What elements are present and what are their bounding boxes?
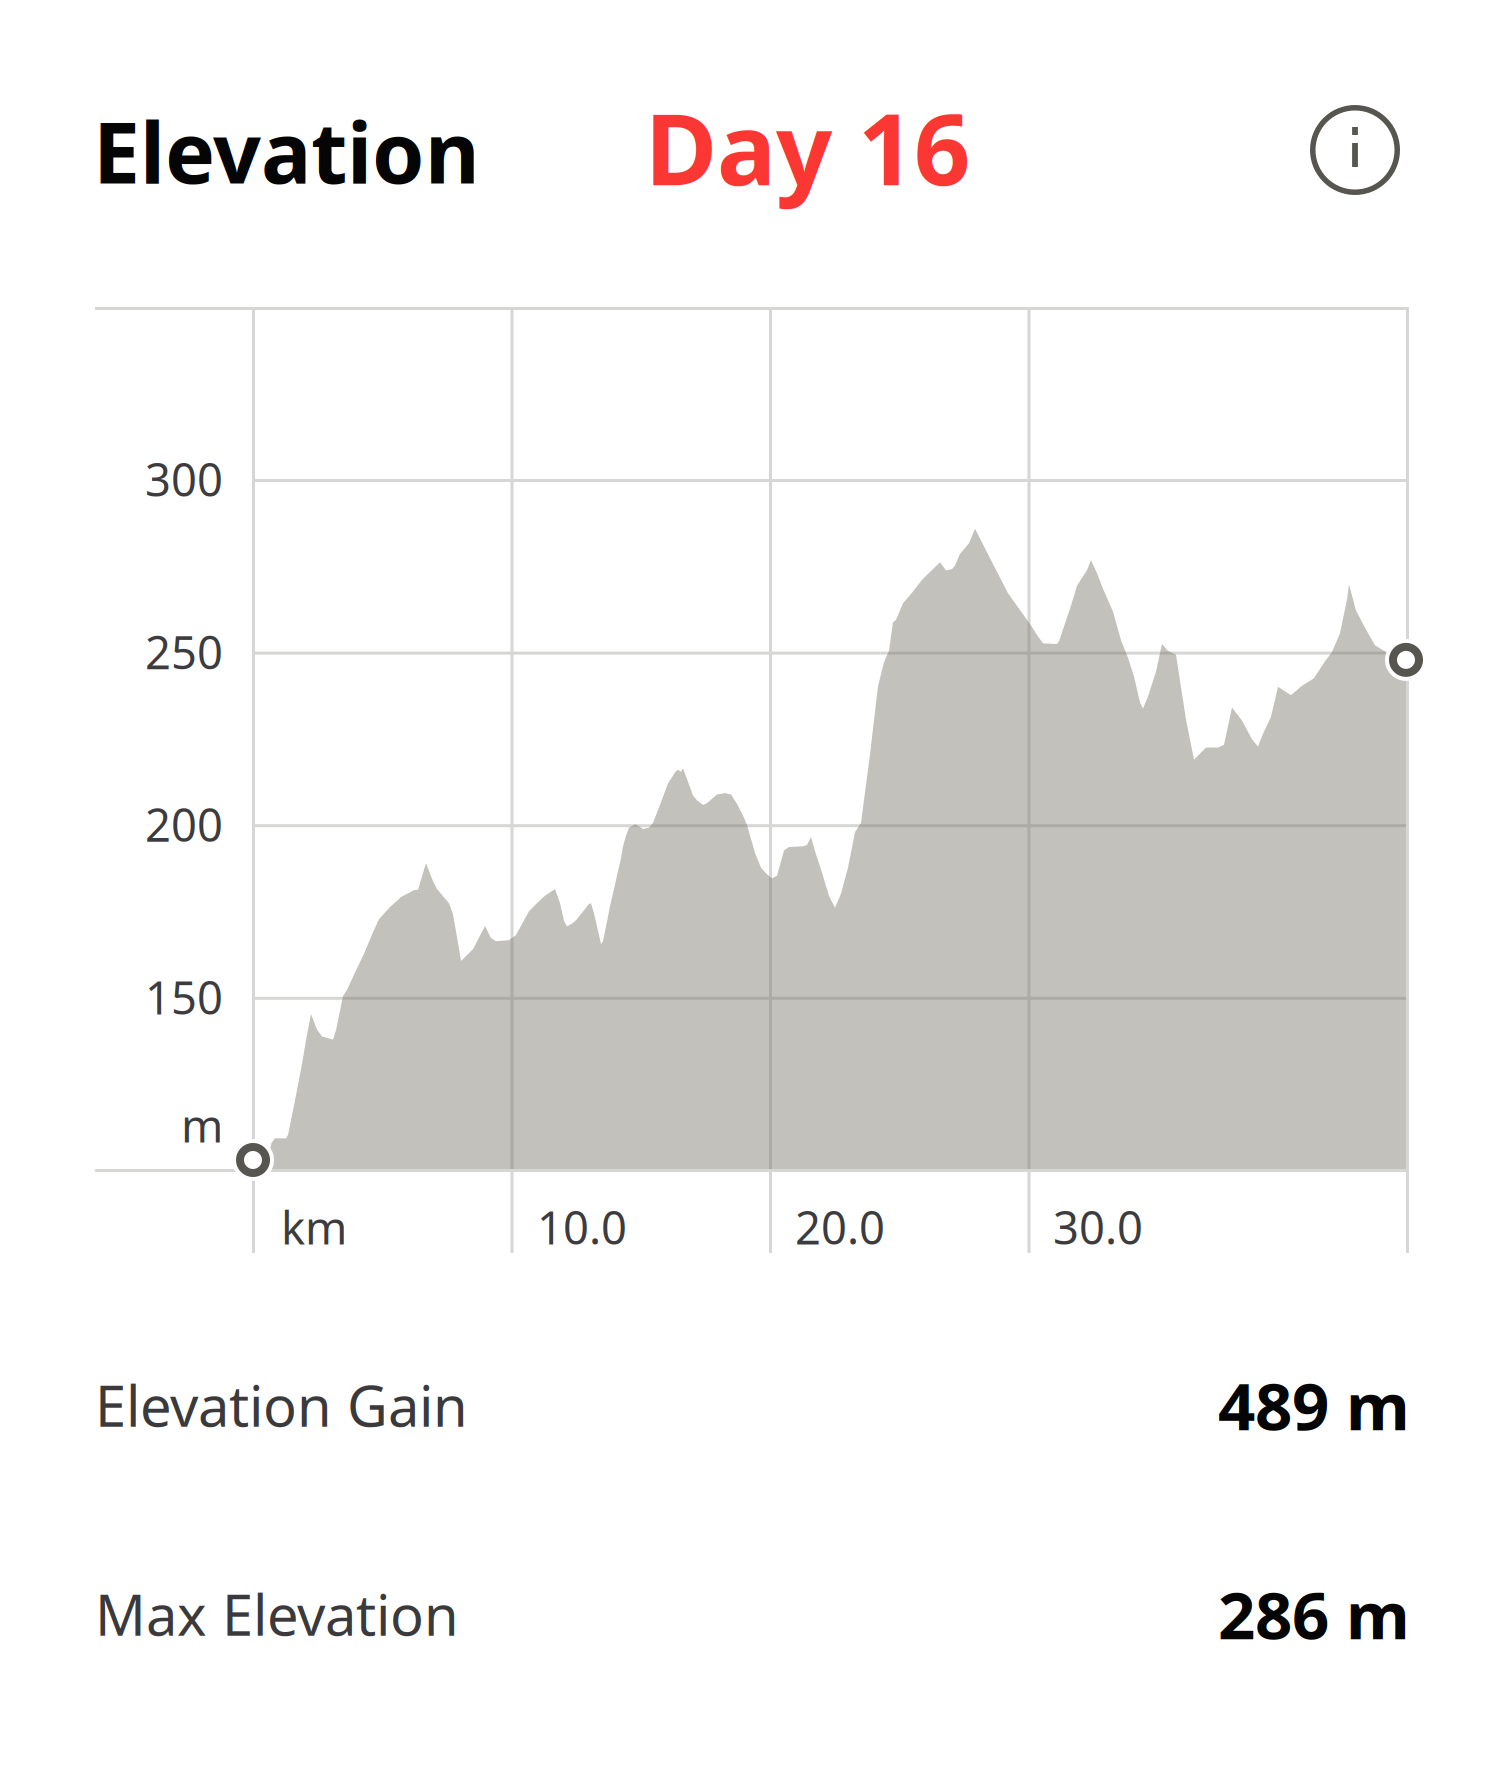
staticText: Day 16 <box>645 81 970 212</box>
staticText: Elevation <box>93 95 480 207</box>
staticText: 250 <box>145 621 223 682</box>
staticText: 489 m <box>1218 1362 1410 1448</box>
staticText: 286 m <box>1218 1571 1410 1657</box>
staticText: 300 <box>145 449 223 509</box>
staticText: km <box>281 1197 347 1257</box>
staticText: 30.0 <box>1053 1197 1143 1257</box>
staticText: 200 <box>145 794 223 854</box>
staticText: Elevation Gain <box>95 1368 468 1442</box>
staticText: 20.0 <box>795 1197 885 1257</box>
staticText: 10.0 <box>537 1197 627 1257</box>
button[interactable]: Info <box>1308 103 1402 197</box>
staticText: m <box>181 1095 223 1155</box>
staticText: Max Elevation <box>95 1577 459 1651</box>
staticText: 150 <box>145 967 223 1027</box>
